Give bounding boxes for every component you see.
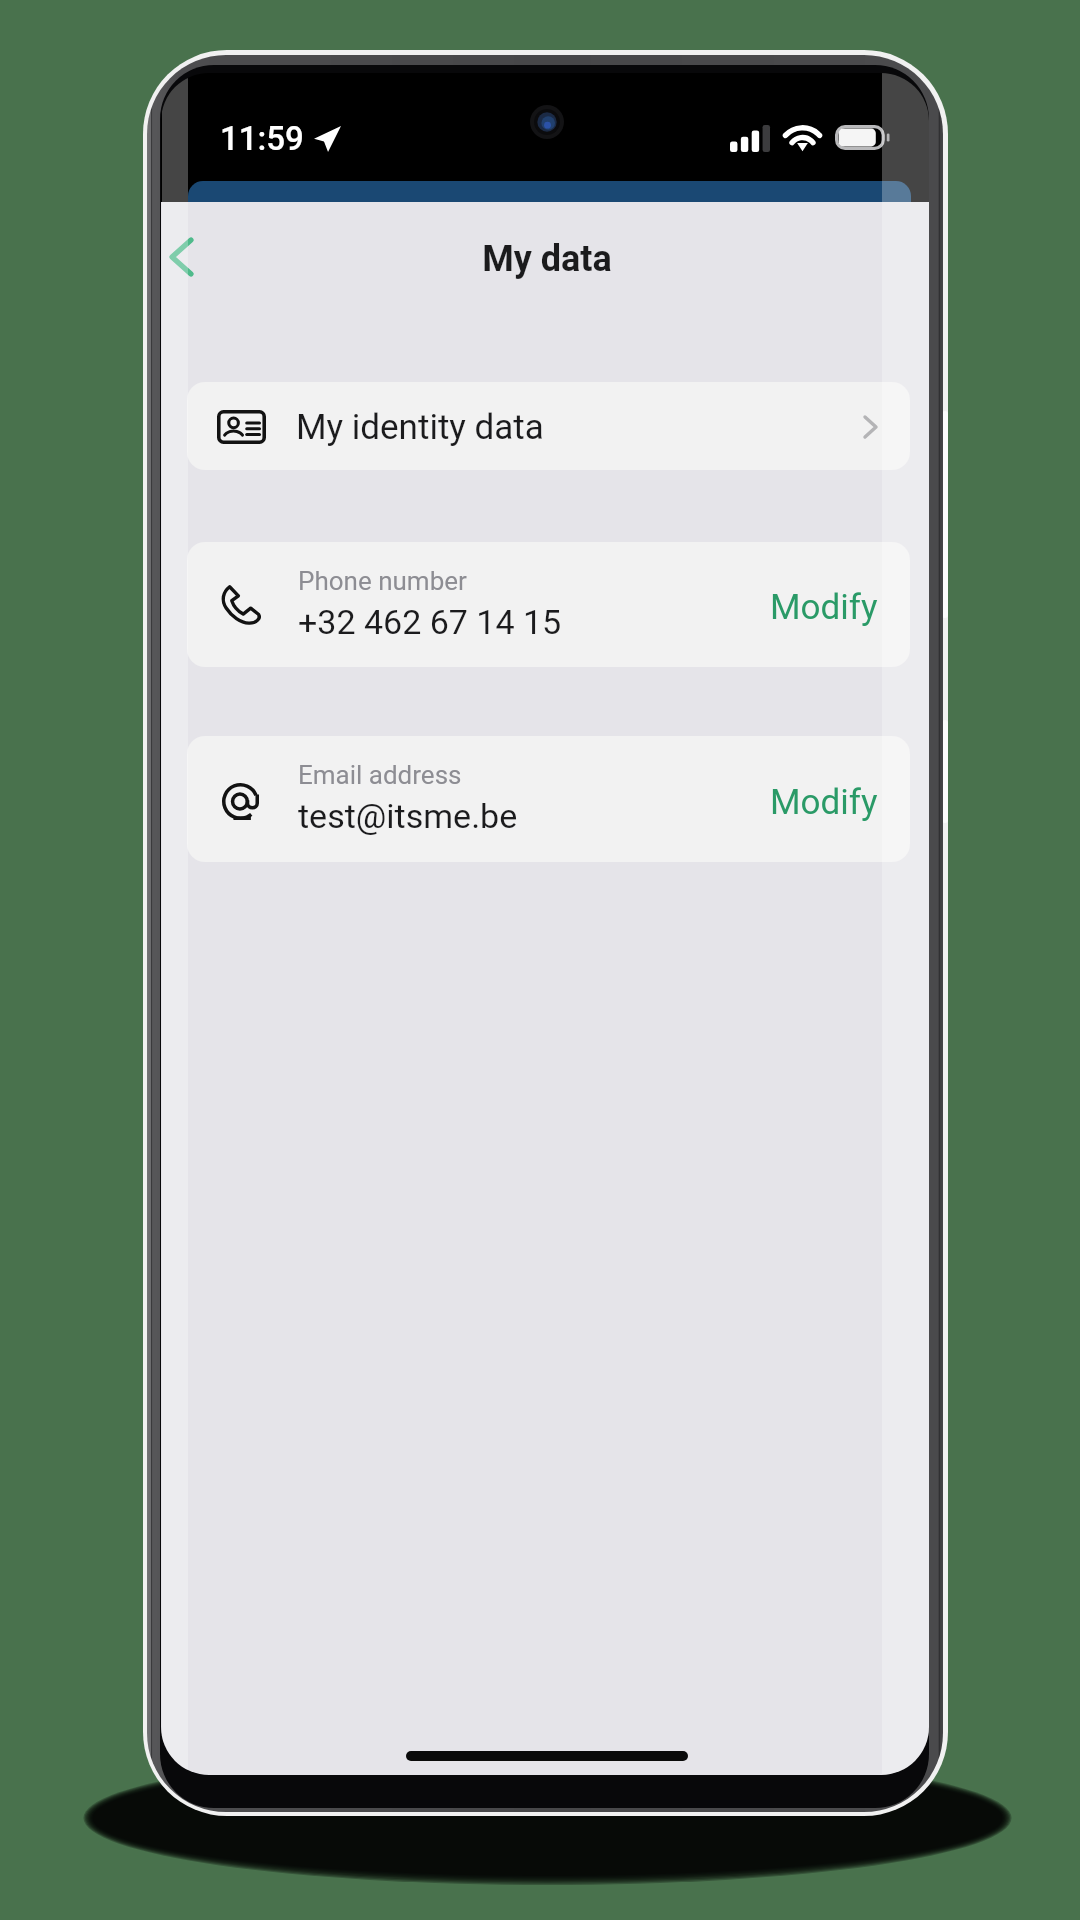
staticText: My data <box>163 238 929 280</box>
staticText: Email address <box>298 760 462 790</box>
button[interactable]: Back <box>161 202 247 310</box>
button[interactable]: My identity data <box>187 382 910 470</box>
button[interactable]: Modify <box>765 764 883 840</box>
button[interactable]: Phone number <box>187 542 910 667</box>
staticText: test@itsme.be <box>298 796 518 836</box>
staticText: 11:59 <box>220 119 304 158</box>
staticText: Phone number <box>298 566 467 596</box>
staticText: +32 462 67 14 15 <box>298 602 562 642</box>
staticText: Modify <box>770 782 878 823</box>
button[interactable]: Modify <box>765 569 883 645</box>
staticText: Modify <box>770 587 878 628</box>
staticText: My identity data <box>296 407 544 448</box>
button[interactable]: Email address <box>187 736 910 862</box>
